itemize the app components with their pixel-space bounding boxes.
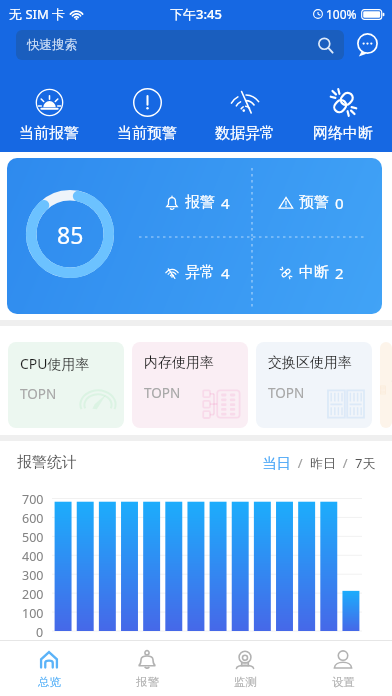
staticText: 0	[36, 624, 44, 640]
staticText: 当前报警	[19, 124, 79, 143]
staticText: /	[291, 454, 310, 472]
staticText: TOPN	[268, 384, 305, 402]
staticText: 交换区使用率	[268, 354, 352, 372]
button[interactable]: 预警	[253, 168, 367, 237]
button[interactable]: 交换区使用率	[256, 342, 372, 428]
staticText: 300	[22, 567, 44, 584]
staticText: 100	[22, 605, 44, 622]
button[interactable]: Messages	[350, 28, 384, 62]
button[interactable]: 当前预警	[98, 88, 196, 143]
button[interactable]: 监测	[196, 641, 294, 696]
staticText: 100%	[326, 6, 357, 22]
button[interactable]: 快速搜索	[16, 30, 344, 60]
other: Search	[317, 37, 334, 54]
staticText: 中断	[299, 263, 329, 282]
staticText: 0	[335, 193, 344, 213]
staticText: 4	[221, 263, 230, 283]
staticText: 当前预警	[117, 124, 177, 143]
button[interactable]: 7天	[355, 454, 376, 472]
staticText: 下午3:45	[170, 5, 222, 23]
button[interactable]: 昨日	[310, 455, 336, 471]
staticText: 预警	[299, 193, 329, 212]
button[interactable]: 中断	[253, 238, 367, 307]
staticText: 500	[22, 529, 44, 546]
staticText: 快速搜索	[27, 37, 77, 53]
staticText: 异常	[185, 263, 215, 282]
staticText: TOPN	[144, 384, 181, 402]
staticText: 昨日	[310, 455, 336, 471]
staticText: 设置	[332, 675, 355, 689]
button[interactable]: 设置	[294, 641, 392, 696]
staticText: CPU使用率	[20, 354, 90, 373]
staticText: 网络中断	[313, 124, 373, 143]
staticText: /	[336, 454, 355, 472]
button[interactable]: 工作区	[380, 342, 392, 428]
staticText: 数据异常	[215, 124, 275, 143]
staticText: 监测	[234, 675, 257, 689]
button[interactable]: 异常	[139, 238, 252, 307]
staticText: 无 SIM 卡	[9, 5, 66, 23]
staticText: 600	[22, 510, 44, 527]
staticText: TOPN	[20, 385, 57, 403]
staticText: 200	[22, 586, 44, 603]
staticText: 7天	[355, 454, 376, 472]
button[interactable]: 数据异常	[196, 88, 294, 143]
button[interactable]: CPU使用率	[8, 342, 124, 428]
staticText: 2	[335, 263, 344, 283]
button[interactable]: 报警	[139, 168, 252, 237]
staticText: 85	[57, 219, 84, 250]
button[interactable]: 当日	[262, 454, 291, 472]
staticText: 当日	[262, 454, 291, 472]
staticText: 内存使用率	[144, 354, 214, 372]
staticText: 400	[22, 548, 44, 565]
staticText: 700	[22, 491, 44, 508]
button[interactable]: 内存使用率	[132, 342, 248, 428]
button[interactable]: 报警	[98, 641, 196, 696]
button[interactable]: 网络中断	[294, 88, 392, 143]
staticText: 报警	[136, 675, 159, 689]
staticText: 总览	[38, 675, 61, 689]
staticText: 报警	[185, 193, 215, 212]
staticText: 4	[221, 193, 230, 213]
staticText: 报警统计	[17, 453, 77, 472]
button[interactable]: 总览	[0, 641, 98, 696]
button[interactable]: 当前报警	[0, 88, 98, 143]
